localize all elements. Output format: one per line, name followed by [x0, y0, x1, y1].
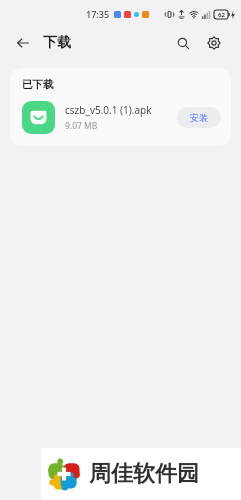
- button[interactable]: Search: [170, 30, 196, 56]
- button[interactable]: Back: [10, 30, 36, 56]
- staticText: 62: [218, 11, 225, 19]
- button[interactable]: cszb_v5.0.1 (1).apk: [22, 101, 221, 134]
- staticText: 安装: [190, 112, 208, 123]
- staticText: 9.07 MB: [65, 120, 98, 132]
- staticText: 已下载: [22, 78, 54, 91]
- staticText: 17:35: [86, 8, 110, 20]
- button[interactable]: Settings: [201, 30, 227, 56]
- staticText: 下载: [43, 34, 71, 52]
- button[interactable]: 安装: [177, 107, 221, 128]
- staticText: 周佳软件园: [89, 460, 199, 488]
- staticText: cszb_v5.0.1 (1).apk: [65, 103, 152, 117]
